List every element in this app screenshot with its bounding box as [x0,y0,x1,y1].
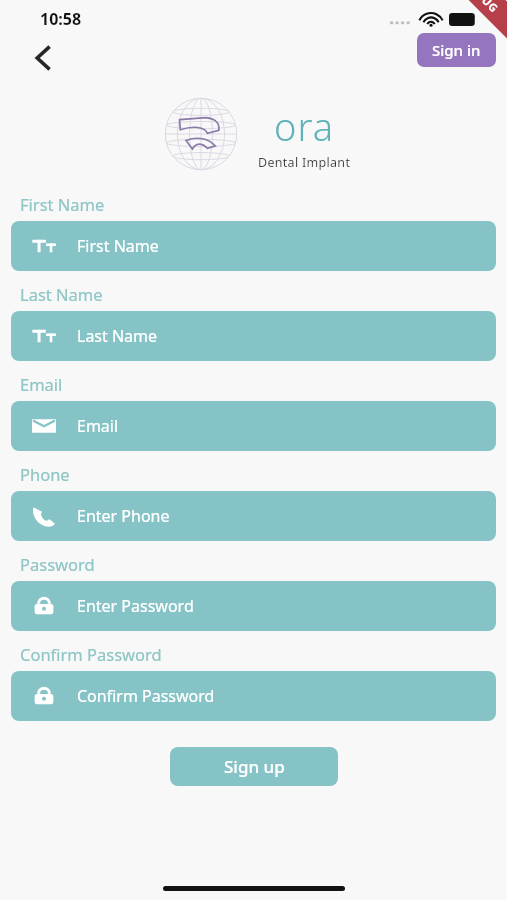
staticText: Last Name [20,283,103,305]
staticText: 10:58 [40,8,82,30]
staticText: Sign in [432,40,481,60]
staticText: ora [274,100,335,152]
button[interactable]: Sign up [170,747,338,786]
button[interactable]: Sign in [417,33,496,67]
staticText: Password [20,553,95,575]
staticText: Dental Implant [258,154,351,171]
button[interactable]: First Name [11,221,496,271]
button[interactable]: Enter Phone [11,491,496,541]
staticText: First Name [77,235,159,257]
staticText: Enter Password [77,595,194,617]
staticText: DEBUG [462,0,502,15]
staticText: Last Name [77,325,158,347]
staticText: Email [20,373,63,395]
staticText: Sign up [224,755,285,778]
staticText: Confirm Password [20,643,162,665]
button[interactable]: Email [11,401,496,451]
button[interactable]: Back [22,36,66,80]
button[interactable]: Enter Password [11,581,496,631]
staticText: Confirm Password [77,685,215,707]
staticText: Enter Phone [77,505,170,527]
staticText: First Name [20,193,105,215]
staticText: Phone [20,463,70,485]
staticText: Email [77,415,119,437]
button[interactable]: Confirm Password [11,671,496,721]
button[interactable]: Last Name [11,311,496,361]
